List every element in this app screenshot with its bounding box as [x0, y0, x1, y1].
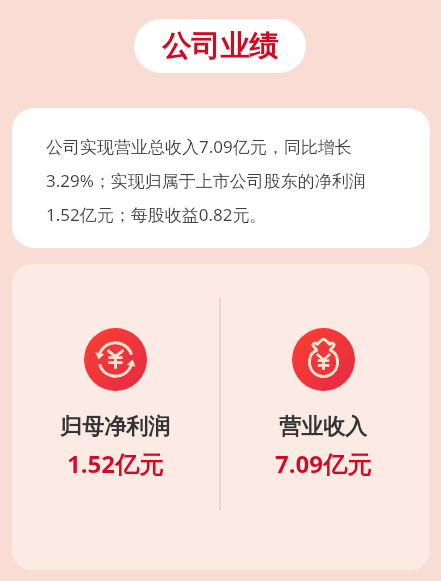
button[interactable]: Net profit: [25, 328, 205, 480]
other: Revenue: [292, 328, 355, 391]
staticText: 归母净利润: [60, 413, 170, 441]
button[interactable]: 公司业绩: [134, 19, 306, 73]
other: Net profit: [84, 328, 147, 391]
button[interactable]: Revenue: [233, 328, 413, 480]
staticText: 7.09亿元: [275, 447, 371, 480]
staticText: 公司实现营业总收入7.09亿元，同比增长3.29%；实现归属于上市公司股东的净利…: [46, 135, 386, 226]
staticText: 1.52亿元: [67, 447, 163, 480]
staticText: 公司业绩: [162, 28, 278, 65]
staticText: 营业收入: [279, 413, 367, 441]
